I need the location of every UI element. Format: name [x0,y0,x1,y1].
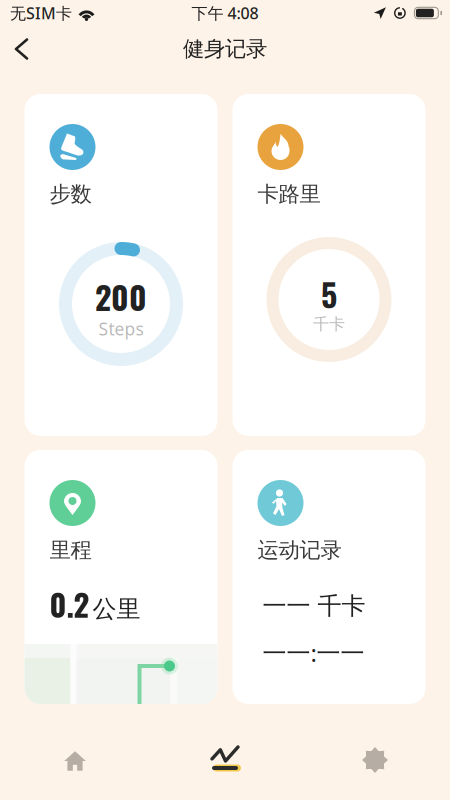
staticText: 200 [95,273,147,320]
staticText: 下午 4:08 [191,2,258,24]
staticText: 步数 [49,181,91,207]
button[interactable]: Home [0,732,150,788]
button[interactable]: Settings [300,732,450,788]
staticText: 5 [321,270,337,317]
staticText: 一一:一一 [262,637,364,669]
staticText: 无SIM卡 [10,2,72,24]
staticText: 公里 [92,594,140,624]
staticText: 千卡 [313,314,345,334]
staticText: 0.2 [49,581,89,627]
staticText: 一一 千卡 [262,591,365,621]
button[interactable]: Back [0,29,43,68]
staticText: 健身记录 [183,36,267,62]
staticText: Steps [98,317,143,340]
staticText: 卡路里 [257,181,320,207]
staticText: 里程 [49,537,91,563]
button[interactable]: Stats [150,732,300,788]
staticText: 运动记录 [257,537,341,563]
